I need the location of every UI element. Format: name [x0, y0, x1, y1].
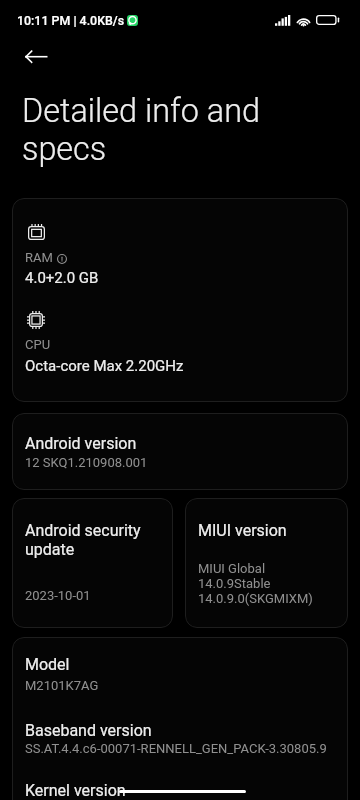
staticText: MIUI Global 14.0.9Stable 14.0.9.0(SKGMIX… — [198, 561, 313, 606]
staticText: Kernel version — [25, 781, 126, 800]
staticText: SS.AT.4.4.c6-00071-RENNELL_GEN_PACK-3.30… — [25, 741, 327, 756]
staticText: Baseband version — [25, 721, 152, 740]
button[interactable]: Android version — [12, 413, 348, 490]
staticText: 2023-10-01 — [25, 588, 91, 603]
staticText: M2101K7AG — [25, 678, 99, 693]
staticText: Model — [25, 655, 70, 674]
button[interactable]: Model — [12, 637, 348, 800]
staticText: Detailed info and specs — [22, 92, 260, 168]
staticText: CPU — [25, 337, 51, 352]
staticText: MIUI version — [198, 521, 287, 540]
staticText: 12 SKQ1.210908.001 — [25, 455, 148, 470]
staticText: Octa-core Max 2.20GHz — [25, 357, 184, 375]
button[interactable]: Back — [18, 44, 54, 70]
button[interactable]: RAM — [12, 198, 348, 402]
staticText: 4.0+2.0 GB — [25, 269, 99, 287]
button[interactable]: Android security update — [12, 498, 173, 628]
staticText: Android version — [25, 434, 137, 453]
staticText: RAM — [25, 250, 53, 265]
staticText: 10:11 PM | 4.0KB/s — [17, 13, 125, 28]
button[interactable]: MIUI version — [185, 498, 348, 628]
staticText: Android security update — [25, 521, 141, 559]
